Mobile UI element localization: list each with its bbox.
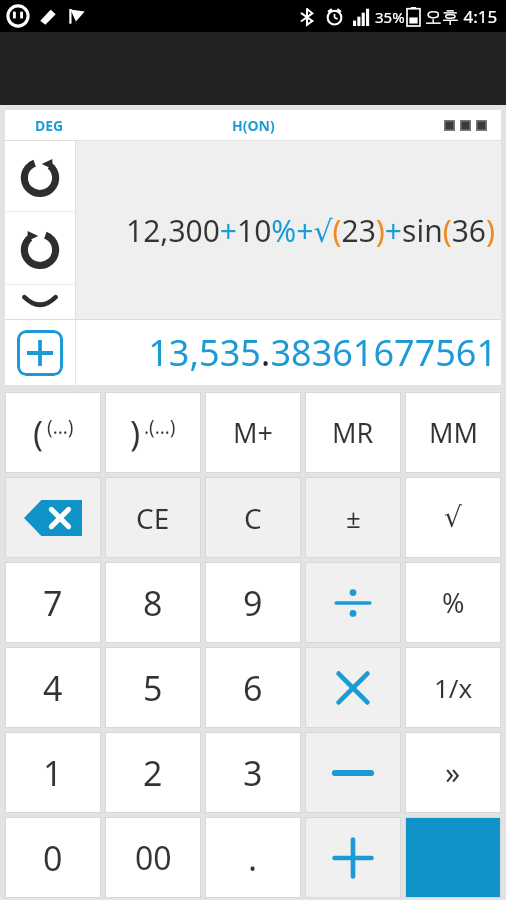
staticText: DEG [35,116,64,135]
button[interactable]: C [205,477,301,558]
staticText: H(ON) [232,116,275,135]
button[interactable]: 8 [105,562,201,643]
staticText: 12,300+10%+√(23)+sin(36) [126,210,495,251]
button[interactable]: MR [305,392,401,473]
staticText: ± [346,500,361,535]
button[interactable]: Redo [5,141,75,211]
staticText: M+ [233,414,273,451]
staticText: 9 [243,580,263,626]
staticText: . [248,835,258,881]
button[interactable]: Add [305,817,401,898]
button[interactable]: ( [5,392,101,473]
staticText: MM [429,414,478,451]
staticText: 4 [43,665,63,711]
staticText: % [442,584,465,621]
button[interactable]: 5 [105,647,201,728]
staticText: (…) [47,414,74,440]
staticText: 1/x [434,670,473,705]
button[interactable]: Expand history [5,285,75,319]
staticText: √ [444,501,462,534]
button[interactable]: √ [405,477,501,558]
button[interactable]: Multiply [305,647,401,728]
button[interactable]: M+ [205,392,301,473]
button[interactable]: Divide [305,562,401,643]
staticText: MR [332,414,374,451]
button[interactable]: 0 [5,817,101,898]
button[interactable]: Add to memory [5,320,75,385]
button[interactable]: 4 [5,647,101,728]
staticText: 8 [143,580,163,626]
button[interactable]: Backspace [5,477,101,558]
staticText: CE [136,499,170,537]
staticText: 2 [143,750,163,796]
button[interactable]: . [205,817,301,898]
staticText: 13,535.38361677561 [148,328,497,377]
button[interactable]: Undo [5,212,75,284]
staticText: 3 [243,750,263,796]
button[interactable]: MM [405,392,501,473]
button[interactable]: 00 [105,817,201,898]
button[interactable]: 6 [205,647,301,728]
staticText: ( [33,410,44,456]
staticText: .(…) [144,414,176,440]
staticText: 5 [143,665,163,711]
button[interactable]: ) [105,392,201,473]
button[interactable]: 2 [105,732,201,813]
button[interactable]: » [405,732,501,813]
staticText: C [244,499,262,537]
button[interactable]: 1 [5,732,101,813]
button[interactable]: Equals [405,817,501,898]
button[interactable]: 9 [205,562,301,643]
staticText: 00 [135,836,172,880]
button[interactable]: 7 [5,562,101,643]
button[interactable]: 1/x [405,647,501,728]
button[interactable]: Subtract [305,732,401,813]
staticText: 1 [43,750,63,796]
staticText: ) [130,410,141,456]
staticText: 7 [43,580,63,626]
staticText: 6 [243,665,263,711]
staticText: 오후 4:15 [425,5,498,28]
staticText: 35% [375,7,405,27]
button[interactable]: ± [305,477,401,558]
button[interactable]: CE [105,477,201,558]
staticText: 0 [43,835,63,881]
staticText: » [445,752,461,793]
button[interactable]: % [405,562,501,643]
button[interactable]: 3 [205,732,301,813]
